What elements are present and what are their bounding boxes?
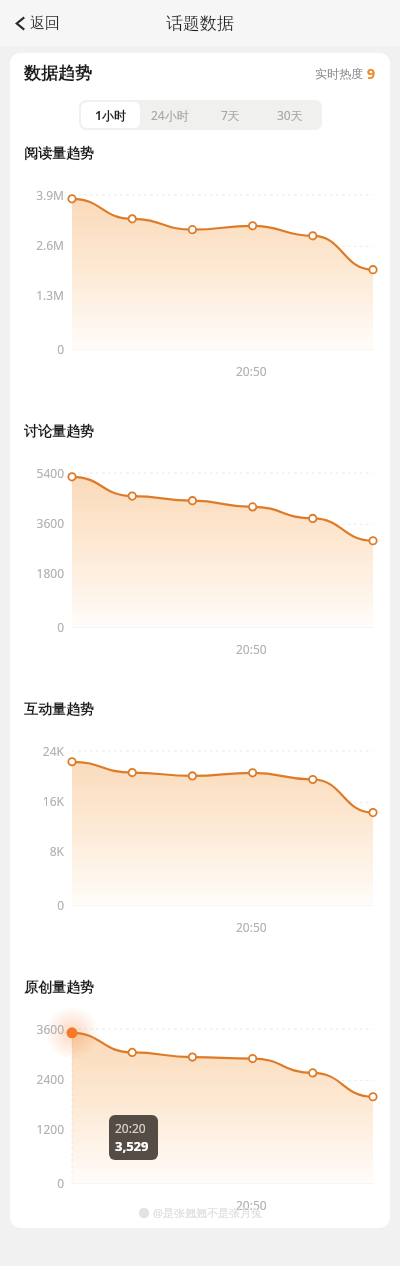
staticText: 1200	[36, 1121, 64, 1137]
button[interactable]: 30天	[260, 102, 320, 128]
staticText: 讨论量趋势	[24, 423, 94, 441]
staticText: 3600	[36, 1021, 64, 1037]
staticText: 24小时	[151, 107, 189, 123]
staticText: 阅读量趋势	[24, 145, 94, 163]
staticText: 20:20	[115, 1120, 146, 1136]
staticText: 1.3M	[36, 287, 64, 303]
staticText: 3600	[36, 515, 64, 531]
staticText: 20:50	[236, 363, 267, 379]
staticText: 3,529	[115, 1137, 149, 1155]
staticText: 20:50	[236, 919, 267, 935]
button[interactable]: 1小时	[81, 102, 140, 128]
button[interactable]: 实时热度	[315, 64, 376, 83]
staticText: 20:50	[236, 1197, 267, 1213]
staticText: 返回	[30, 14, 60, 33]
staticText: 0	[57, 1175, 64, 1191]
staticText: 原创量趋势	[24, 979, 94, 997]
staticText: 话题数据	[166, 13, 234, 34]
staticText: 1小时	[95, 107, 126, 123]
staticText: 8K	[49, 843, 64, 859]
staticText: 互动量趋势	[24, 701, 94, 719]
staticText: 9	[367, 64, 376, 83]
button[interactable]: 24小时	[140, 102, 200, 128]
staticText: 3.9M	[36, 187, 64, 203]
staticText: 5400	[36, 465, 64, 481]
button[interactable]: 返回	[6, 8, 66, 39]
staticText: @是张翘翘不是张月兔	[153, 1205, 262, 1220]
staticText: 24K	[42, 743, 64, 759]
button[interactable]: 7天	[200, 102, 260, 128]
staticText: 实时热度	[315, 66, 363, 81]
staticText: 0	[57, 619, 64, 635]
staticText: 16K	[42, 793, 64, 809]
staticText: 数据趋势	[24, 63, 92, 84]
staticText: 2.6M	[36, 237, 64, 253]
staticText: 0	[57, 341, 64, 357]
staticText: 7天	[221, 107, 240, 123]
staticText: 2400	[36, 1071, 64, 1087]
staticText: 1800	[36, 565, 64, 581]
staticText: 20:50	[236, 641, 267, 657]
staticText: 0	[57, 897, 64, 913]
staticText: 30天	[277, 107, 303, 123]
